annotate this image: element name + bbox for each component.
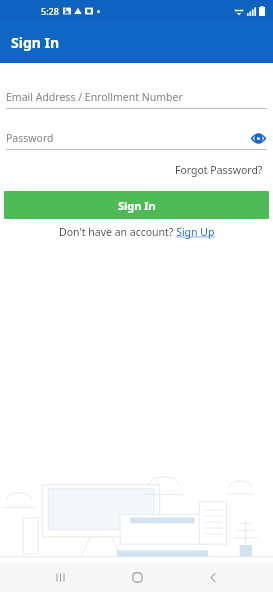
staticText: Sign In: [11, 33, 60, 52]
staticText: Sign In: [118, 198, 156, 213]
button[interactable]: Home: [120, 563, 154, 592]
staticText: Email Address / Enrollment Number: [6, 90, 183, 104]
button[interactable]: Recents: [43, 563, 77, 592]
button[interactable]: Forgot Password?: [173, 160, 265, 180]
staticText: Don't have an account? Sign Up: [59, 225, 215, 239]
button[interactable]: Back: [196, 563, 230, 592]
button[interactable]: Don't have an account? Sign Up: [59, 223, 215, 241]
button[interactable]: Sign In: [4, 191, 269, 219]
button[interactable]: Show password: [249, 129, 267, 147]
staticText: 5:28: [41, 5, 59, 17]
staticText: Forgot Password?: [175, 163, 263, 177]
staticText: Password: [6, 131, 54, 145]
